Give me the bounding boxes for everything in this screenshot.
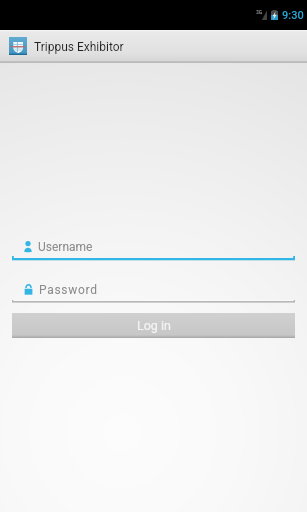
other: App icon: [9, 37, 27, 55]
staticText: Password: [39, 283, 98, 297]
other: Battery charging: [271, 10, 278, 20]
button[interactable]: Password: [12, 275, 295, 304]
staticText: Trippus Exhibitor: [34, 40, 124, 54]
button[interactable]: App icon: [9, 30, 307, 63]
staticText: Username: [38, 240, 93, 254]
other: 3G signal: [256, 10, 267, 20]
staticText: Log in: [137, 318, 171, 333]
button[interactable]: Log in: [12, 313, 295, 338]
staticText: 9:30: [282, 9, 304, 22]
button[interactable]: Username: [12, 232, 295, 261]
